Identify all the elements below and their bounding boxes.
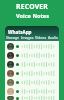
button[interactable]: Images [21, 35, 34, 40]
staticText: Videos [35, 35, 47, 40]
button[interactable] [5, 51, 59, 60]
button[interactable] [5, 69, 59, 78]
staticText: WhatsApp [8, 29, 32, 35]
staticText: Voice Notes [16, 12, 49, 20]
button[interactable] [5, 87, 59, 96]
staticText: Images [21, 35, 34, 40]
button[interactable] [5, 96, 59, 100]
button[interactable] [5, 42, 59, 51]
button[interactable] [5, 60, 59, 69]
staticText: RECOVER [16, 2, 48, 11]
staticText: Audio [48, 35, 58, 40]
staticText: Storage [6, 35, 20, 40]
button[interactable]: Audio [48, 35, 58, 40]
button[interactable]: Storage [6, 35, 20, 40]
button[interactable] [5, 78, 59, 87]
button[interactable]: Videos [35, 35, 47, 40]
